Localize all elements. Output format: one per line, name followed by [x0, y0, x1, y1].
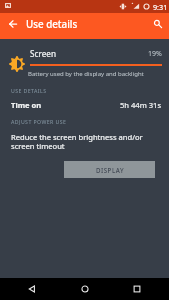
staticText: 5h 44m 31s: [120, 100, 162, 110]
staticText: Battery used by the display and backligh…: [28, 70, 144, 78]
staticText: DISPLAY: [96, 166, 124, 174]
staticText: Reduce the screen brightness and/or scre…: [11, 132, 159, 151]
staticText: Screen: [30, 48, 56, 59]
button[interactable]: [0, 45, 169, 81]
staticText: 19%: [148, 49, 162, 59]
staticText: USE DETAILS: [11, 87, 47, 94]
staticText: 9:31: [153, 2, 168, 12]
button[interactable]: DISPLAY: [64, 161, 155, 178]
staticText: Time on: [11, 100, 42, 110]
staticText: Use details: [26, 18, 78, 31]
button[interactable]: Navigate up: [3, 14, 23, 34]
button[interactable]: Back: [11, 278, 53, 300]
button[interactable]: Home: [64, 278, 106, 300]
button[interactable]: Time on: [0, 97, 169, 113]
button[interactable]: Search: [148, 14, 168, 34]
staticText: ADJUST POWER USE: [11, 118, 67, 125]
button[interactable]: Recent apps: [116, 278, 158, 300]
